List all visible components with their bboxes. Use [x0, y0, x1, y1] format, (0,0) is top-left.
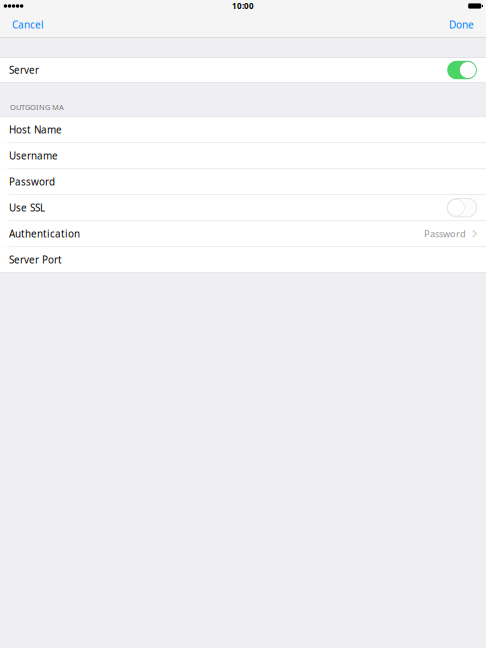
staticText: Cancel	[12, 18, 44, 31]
button[interactable]: Server Port	[0, 247, 486, 273]
staticText: Server Port	[9, 253, 62, 266]
button[interactable]: Username	[0, 143, 486, 169]
staticText: Use SSL	[9, 201, 45, 214]
button[interactable]: Password	[0, 169, 486, 195]
button[interactable]: Use SSL	[0, 195, 486, 221]
button[interactable]: Server	[0, 58, 486, 83]
button[interactable]: Authentication	[0, 221, 486, 247]
staticText: Username	[9, 149, 58, 162]
staticText: OUTGOING MA	[10, 102, 64, 112]
button[interactable]: Done	[441, 12, 486, 37]
button[interactable]: On	[447, 61, 477, 79]
staticText: Password	[424, 227, 466, 240]
staticText: Authentication	[9, 227, 80, 240]
staticText: Server	[9, 63, 39, 77]
staticText: Done	[449, 18, 474, 31]
staticText: 10:00	[232, 1, 254, 11]
staticText: Password	[9, 175, 55, 188]
button[interactable]: Off	[447, 198, 477, 217]
staticText: Host Name	[9, 123, 62, 136]
button[interactable]: Host Name	[0, 117, 486, 143]
button[interactable]: Cancel	[0, 12, 52, 37]
